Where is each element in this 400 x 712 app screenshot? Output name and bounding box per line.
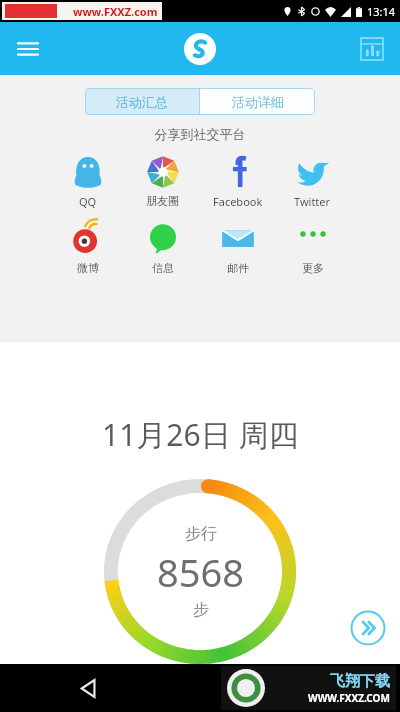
button[interactable]: Menu (8, 29, 48, 69)
staticText: 邮件 (227, 261, 249, 275)
staticText: Facebook (213, 194, 263, 209)
staticText: 微博 (77, 261, 99, 275)
staticText: 朋友圈 (146, 194, 179, 208)
button[interactable]: Back (70, 670, 106, 706)
staticText: 活动汇总 (116, 94, 168, 110)
staticText: 分享到社交平台 (0, 126, 400, 142)
button[interactable]: 活动汇总 (85, 88, 199, 115)
button[interactable]: Facebook (200, 154, 275, 209)
button[interactable]: 活动详细 (200, 88, 315, 115)
staticText: 13:14 (367, 4, 396, 19)
button[interactable]: Twitter (275, 154, 350, 209)
staticText: 步行 (185, 524, 217, 544)
staticText: 更多 (302, 261, 324, 275)
button[interactable]: 更多 (275, 221, 350, 275)
staticText: WWW.FXXZ.COM (308, 691, 390, 705)
staticText: 活动详细 (232, 94, 284, 110)
button[interactable]: 邮件 (200, 221, 275, 275)
button[interactable]: Next (350, 610, 386, 646)
staticText: Twitter (294, 194, 331, 209)
staticText: 11月26日 周四 (102, 414, 299, 455)
staticText: 飞翔下载 (330, 672, 390, 691)
button[interactable]: 微博 (50, 221, 125, 275)
button[interactable]: QQ (50, 154, 125, 209)
button[interactable]: Statistics (352, 29, 392, 69)
button[interactable]: 信息 (125, 221, 200, 275)
staticText: 信息 (152, 261, 174, 275)
staticText: QQ (79, 194, 97, 209)
button[interactable]: 朋友圈 (125, 154, 200, 208)
staticText: 步 (193, 600, 209, 620)
staticText: www.FXXZ.com (73, 4, 158, 19)
staticText: 8568 (157, 546, 244, 598)
